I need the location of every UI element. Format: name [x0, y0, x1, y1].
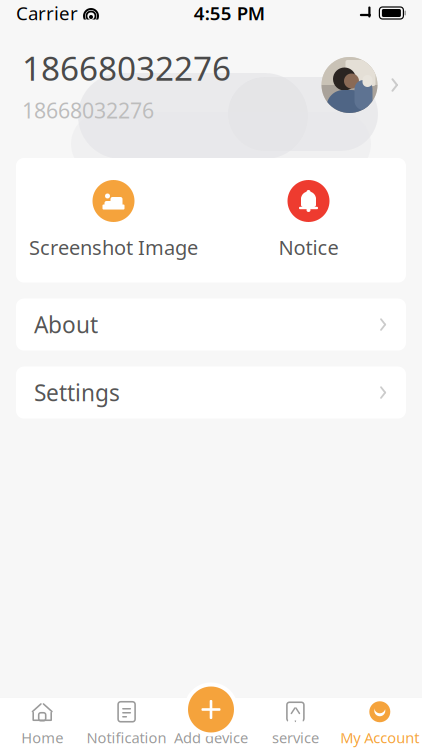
button[interactable]: My Account: [338, 697, 422, 750]
staticText: Carrier: [16, 1, 78, 25]
button[interactable]: Notification: [84, 697, 169, 750]
button[interactable]: Home: [0, 697, 84, 750]
staticText: 4:55 PM: [194, 1, 265, 25]
staticText: Screenshot Image: [29, 234, 198, 261]
staticText: Settings: [34, 377, 120, 408]
staticText: Home: [21, 728, 63, 747]
staticText: About: [34, 309, 98, 340]
staticText: 18668032276: [22, 46, 231, 90]
staticText: My Account: [340, 728, 419, 747]
staticText: service: [272, 728, 319, 747]
staticText: Notification: [87, 728, 167, 747]
button[interactable]: Settings: [16, 367, 406, 419]
staticText: Notice: [278, 234, 338, 261]
button[interactable]: service: [253, 697, 338, 750]
button[interactable]: Add device: [184, 682, 238, 736]
button[interactable]: Screenshot Image: [16, 158, 211, 283]
button[interactable]: About: [16, 299, 406, 351]
button[interactable]: Add device: [169, 697, 253, 750]
button[interactable]: 18668032276: [0, 26, 422, 144]
button[interactable]: Notice: [211, 158, 406, 283]
staticText: 18668032276: [22, 96, 154, 124]
staticText: Add device: [174, 728, 248, 747]
